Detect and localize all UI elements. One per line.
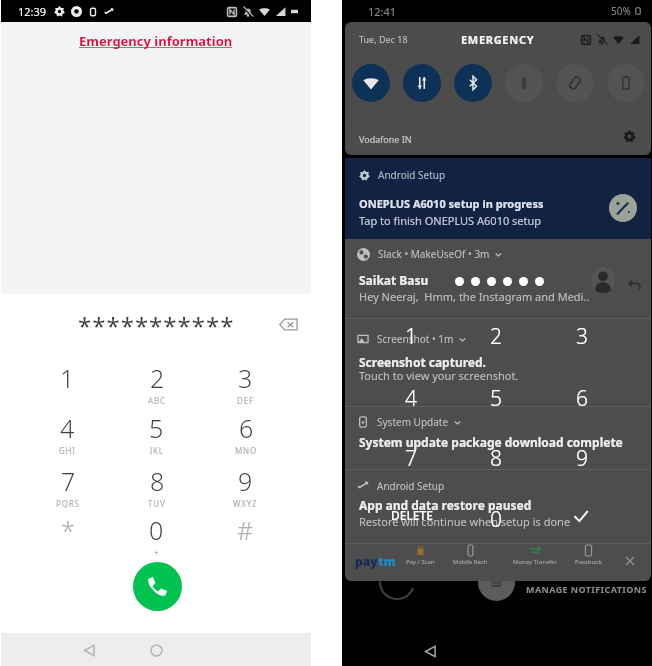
button[interactable]: 2 — [112, 361, 201, 405]
staticText: Android Setup — [377, 479, 445, 493]
button[interactable]: Back — [416, 637, 444, 665]
staticText: 8 — [490, 444, 502, 472]
staticText: Touch to view your screenshot. — [359, 368, 519, 383]
staticText: 3 — [576, 322, 588, 350]
button[interactable]: 5 — [482, 384, 510, 412]
button[interactable]: 0 — [482, 505, 510, 533]
button[interactable]: 1 — [23, 361, 112, 405]
staticText: tm — [378, 553, 396, 569]
staticText: Mobile Rech — [453, 558, 488, 566]
button[interactable]: 0 — [112, 513, 201, 557]
staticText: App and data restore paused — [359, 497, 532, 513]
button[interactable]: 6 — [201, 411, 290, 455]
button[interactable]: System Update — [357, 411, 462, 433]
button[interactable]: 2 — [482, 322, 510, 350]
button[interactable]: Mobile Rech — [444, 545, 496, 566]
button[interactable]: Backspace — [275, 311, 301, 337]
button[interactable]: Quick setting — [454, 64, 492, 102]
staticText: 4 — [60, 411, 75, 445]
button[interactable]: Pay / Scan — [394, 545, 446, 566]
staticText: 5 — [149, 411, 164, 445]
button[interactable]: 3 — [201, 361, 290, 405]
button[interactable]: Home — [141, 635, 171, 665]
button[interactable]: Reply — [625, 274, 643, 292]
staticText: EMERGENCY — [461, 32, 535, 47]
staticText: DEF — [237, 395, 254, 405]
button[interactable]: Quick setting — [352, 64, 390, 102]
button[interactable]: Quick setting — [403, 64, 441, 102]
button[interactable]: Screenshot • 1m — [357, 328, 467, 350]
staticText: Android Setup — [378, 168, 446, 182]
staticText: pay — [355, 553, 378, 569]
button[interactable]: MANAGE NOTIFICATIONS — [526, 583, 647, 595]
button[interactable]: Close — [620, 551, 640, 571]
button[interactable]: Quick setting — [556, 64, 594, 102]
button[interactable]: 8 — [482, 444, 510, 472]
button[interactable]: Quick setting — [607, 64, 645, 102]
button[interactable]: 4 — [397, 384, 425, 412]
button[interactable]: Passbook — [562, 545, 614, 566]
staticText: 6 — [576, 384, 588, 412]
staticText: Hey Neeraj, Hmm, the Instagram and Medi.… — [359, 289, 590, 304]
button[interactable]: Call — [133, 562, 182, 611]
staticText: 1 — [60, 361, 75, 395]
button[interactable]: Quick setting — [505, 64, 543, 102]
staticText: # — [237, 513, 254, 547]
staticText: 0 — [490, 505, 502, 533]
button[interactable]: 7 — [23, 464, 112, 508]
staticText: Screenshot • 1m — [377, 332, 454, 346]
staticText: 2 — [490, 322, 502, 350]
staticText: 7 — [61, 464, 76, 498]
button[interactable]: 1 — [397, 322, 425, 350]
staticText: WXYZ — [233, 498, 258, 508]
staticText: PQRS — [56, 498, 80, 508]
staticText: JKL — [150, 445, 164, 455]
staticText: Passbook — [575, 558, 602, 566]
button[interactable]: 3 — [568, 322, 596, 350]
button[interactable]: Money Transfer — [509, 545, 561, 566]
staticText: Tap to finish ONEPLUS A6010 setup — [359, 213, 542, 228]
staticText: Saikat Basu — [359, 272, 429, 288]
button[interactable]: 9 — [201, 464, 290, 508]
staticText: Vodafone IN — [359, 133, 412, 145]
button[interactable]: 8 — [112, 464, 201, 508]
button[interactable]: 4 — [23, 411, 112, 455]
button[interactable]: * — [23, 513, 112, 557]
staticText: System update package download complete — [359, 434, 623, 450]
staticText: TUV — [148, 498, 166, 508]
button[interactable]: Emergency information — [79, 32, 233, 50]
staticText: Pay / Scan — [406, 558, 435, 566]
staticText: 8 — [150, 464, 165, 498]
staticText: Slack • MakeUseOf • 3m — [378, 247, 490, 261]
staticText: DELETE — [391, 507, 433, 523]
staticText: 3 — [238, 361, 253, 395]
staticText: MANAGE NOTIFICATIONS — [526, 583, 647, 595]
staticText: Emergency information — [79, 32, 233, 50]
staticText: Money Transfer — [513, 558, 557, 566]
button[interactable]: Confirm — [570, 505, 592, 527]
staticText: Tue, Dec 18 — [359, 33, 408, 45]
staticText: 7 — [405, 444, 417, 472]
staticText: 0 — [149, 513, 164, 547]
staticText: 12:39 — [18, 4, 47, 19]
button[interactable]: pay — [355, 553, 396, 569]
button[interactable]: # — [201, 513, 290, 557]
staticText: *********** — [78, 309, 235, 339]
button[interactable]: DELETE — [388, 506, 436, 524]
button[interactable]: 9 — [568, 444, 596, 472]
staticText: Screenshot captured. — [359, 354, 486, 370]
button[interactable]: Android Setup — [357, 475, 445, 497]
staticText: MNO — [235, 445, 257, 455]
staticText: 5 — [490, 384, 502, 412]
staticText: 6 — [239, 411, 254, 445]
button[interactable]: 7 — [397, 444, 425, 472]
button[interactable]: 6 — [568, 384, 596, 412]
staticText: 1 — [405, 322, 417, 350]
button[interactable]: Back — [74, 635, 104, 665]
button[interactable]: Settings — [619, 126, 639, 146]
staticText: * — [61, 513, 75, 547]
button[interactable]: Slack • MakeUseOf • 3m — [357, 243, 503, 265]
button[interactable]: 5 — [112, 411, 201, 455]
staticText: 9 — [238, 464, 253, 498]
button[interactable]: Menu — [478, 564, 515, 601]
